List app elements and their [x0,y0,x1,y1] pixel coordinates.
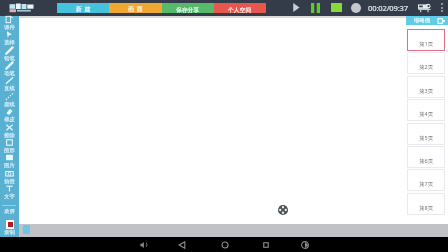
staticText: 缩略图 [414,17,431,24]
staticText: 图形 [4,147,15,153]
staticText: 画 面 [128,5,143,13]
staticText: 保存分享 [176,6,200,13]
staticText: 第3页 [419,87,434,95]
button[interactable]: Pause [310,2,321,14]
staticText: 第4页 [419,110,434,118]
button[interactable]: 画 面 [109,3,162,13]
staticText: 第5页 [419,134,434,142]
button[interactable]: 擦除 [0,123,19,138]
button[interactable]: Cast screen [418,2,432,13]
button[interactable]: 毛笔 [0,61,19,76]
staticText: 第8页 [419,204,434,212]
button[interactable]: Recents [258,237,273,252]
staticText: 第6页 [419,157,434,165]
staticText: 第7页 [419,180,434,188]
staticText: 铅笔 [4,55,15,61]
button[interactable]: Start recording [0,220,19,236]
staticText: 擦除 [4,132,15,138]
button[interactable]: 第6页 [407,146,445,168]
button[interactable]: 个人空间 [214,3,266,13]
staticText: 录屏 [0,208,19,215]
button[interactable]: 新 建 [57,3,109,13]
staticText: 虚线 [4,101,15,107]
button[interactable]: Home [217,237,232,252]
button[interactable]: 铅笔 [0,46,19,61]
staticText: 毛笔 [4,70,15,76]
button[interactable]: 第3页 [407,76,445,98]
staticText: 图片 [4,162,15,168]
staticText: 个人空间 [228,6,252,13]
button[interactable]: App [23,225,30,234]
button[interactable]: 第1页 [407,29,445,51]
button[interactable]: Volume [136,237,151,252]
button[interactable]: 图形 [0,138,19,153]
button[interactable]: 第8页 [407,193,445,215]
staticText: 橡皮 [4,116,15,122]
staticText: 新 建 [76,5,91,13]
button[interactable]: 图片 [0,153,19,168]
button[interactable]: 第5页 [407,123,445,145]
button[interactable]: 缩略图 [406,16,448,25]
staticText: 00:02/09:37 [368,3,408,13]
button[interactable]: 橡皮 [0,107,19,122]
button[interactable]: 虚线 [0,92,19,107]
button[interactable]: 选择 [0,30,19,45]
button[interactable]: 直线 [0,76,19,91]
staticText: 第1页 [419,40,434,48]
staticText: 课件 [4,24,15,30]
button[interactable]: 第4页 [407,99,445,121]
staticText: 直线 [4,85,15,91]
button[interactable]: Logo [9,3,34,13]
button[interactable]: 第2页 [407,52,445,74]
staticText: 录制 [4,229,15,236]
button[interactable]: 保存分享 [162,3,214,13]
button[interactable]: Brightness [297,237,312,252]
staticText: 拍照 [4,178,15,184]
button[interactable]: Back [174,237,189,252]
button[interactable]: 文字 [0,184,19,199]
button[interactable]: Record [351,3,361,13]
staticText: 第2页 [419,63,434,71]
button[interactable]: 拍照 [0,169,19,184]
staticText: 文字 [4,193,15,199]
button[interactable]: More options [438,2,446,13]
button[interactable]: Play [290,2,301,13]
staticText: 选择 [4,39,15,45]
button[interactable]: 第7页 [407,169,445,191]
button[interactable]: 课件 [0,15,19,30]
